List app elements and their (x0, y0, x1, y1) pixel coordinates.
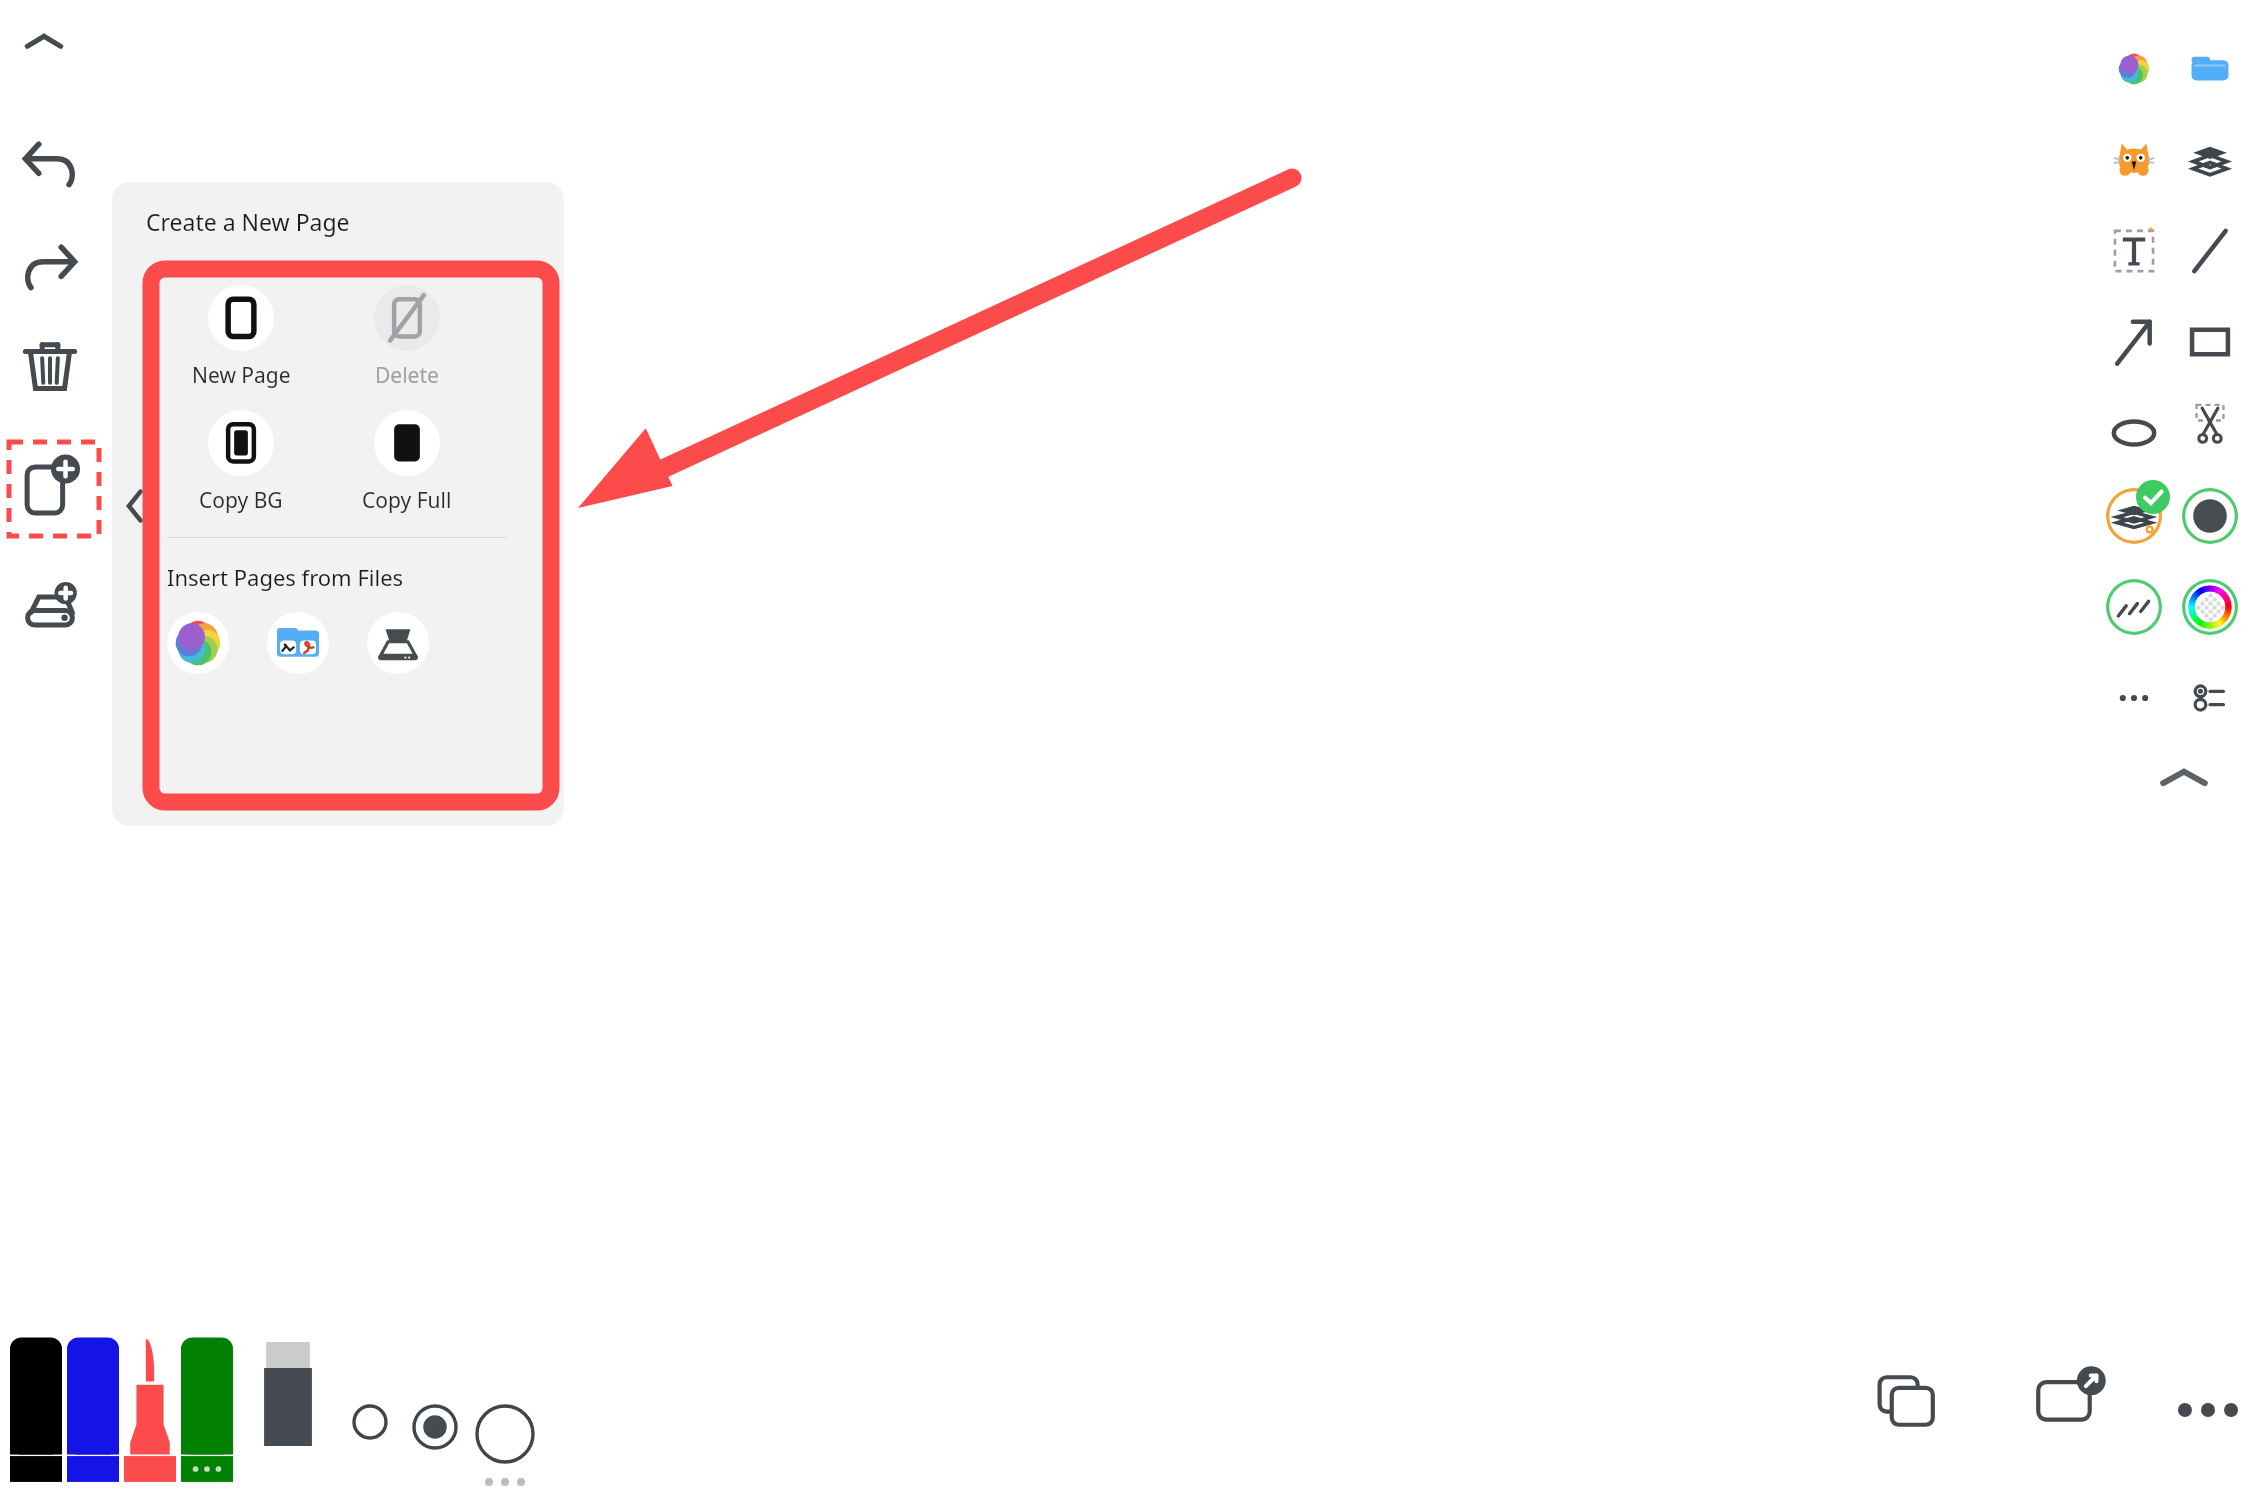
button[interactable]: Pen (67, 1336, 119, 1488)
button[interactable]: Delete (333, 285, 481, 390)
button[interactable]: Redo (14, 228, 86, 300)
button[interactable]: Undo (14, 125, 86, 197)
button[interactable]: Eraser (262, 1342, 314, 1472)
button[interactable]: Palette (2182, 579, 2238, 635)
button[interactable]: Insert from Photos (167, 612, 229, 674)
button[interactable]: Delete page (14, 330, 86, 402)
button[interactable]: Pen (124, 1336, 176, 1488)
button[interactable]: More (2106, 670, 2162, 726)
button[interactable]: Duplicate (1872, 1368, 1948, 1434)
button[interactable]: Pen (10, 1336, 62, 1488)
staticText: Insert Pages from Files (167, 562, 404, 592)
button[interactable]: Files (2182, 33, 2238, 105)
button[interactable]: Insert from Files (267, 612, 329, 674)
button[interactable]: Collapse toolbar (22, 24, 66, 60)
button[interactable]: Layers (2182, 124, 2238, 196)
button[interactable]: New Page (167, 285, 315, 390)
button[interactable]: Layer settings (2106, 488, 2162, 544)
button[interactable]: Ellipse (2106, 397, 2162, 469)
button[interactable]: Collapse panel (118, 482, 152, 530)
button[interactable]: Copy Full (333, 410, 481, 515)
button[interactable]: Photos (2106, 33, 2162, 105)
button[interactable]: Add template (14, 570, 86, 642)
button[interactable]: More options (2172, 1390, 2244, 1430)
button[interactable]: Medium stroke (400, 1400, 470, 1488)
button[interactable]: Collapse tools (2158, 760, 2210, 794)
button[interactable]: Line (2182, 215, 2238, 287)
button[interactable]: Copy BG (167, 410, 315, 515)
staticText: Delete (375, 361, 439, 390)
button[interactable]: Export page (2032, 1362, 2110, 1434)
button[interactable]: Sticker (2106, 124, 2162, 196)
staticText: Create a New Page (146, 206, 350, 237)
button[interactable]: Thin stroke (335, 1400, 405, 1488)
button[interactable]: Add page (6, 439, 102, 539)
button[interactable]: Options (2182, 670, 2238, 726)
button[interactable]: Colour (2182, 488, 2238, 544)
staticText: Copy BG (199, 486, 283, 515)
button[interactable]: Pen (181, 1336, 233, 1488)
staticText: Copy Full (362, 486, 452, 515)
button[interactable]: Stroke style (2106, 579, 2162, 635)
button[interactable]: Lasso (2182, 397, 2238, 453)
button[interactable]: Thick stroke (470, 1400, 540, 1488)
button[interactable]: Rectangle (2182, 306, 2238, 378)
button[interactable]: Insert from Scanner (367, 612, 429, 674)
staticText: New Page (192, 361, 291, 390)
button[interactable]: Text (2106, 215, 2162, 287)
button[interactable]: Arrow (2106, 306, 2162, 378)
